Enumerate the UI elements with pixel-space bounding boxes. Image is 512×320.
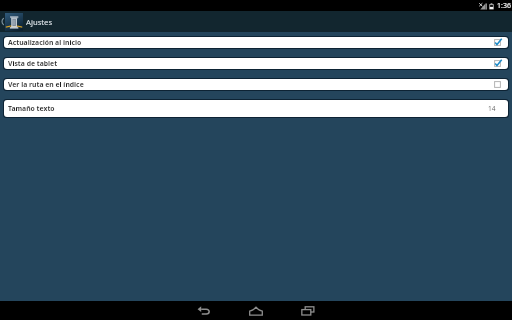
button[interactable]: Home bbox=[230, 301, 282, 320]
button[interactable]: Back bbox=[178, 301, 230, 320]
staticText: 14 bbox=[488, 104, 496, 113]
staticText: Ajustes bbox=[26, 17, 53, 27]
staticText: Ver la ruta en el índice bbox=[8, 80, 493, 89]
staticText: Actualización al inicio bbox=[8, 38, 493, 47]
staticText: Tamaño texto bbox=[8, 104, 488, 113]
staticText: Vista de tablet bbox=[8, 59, 493, 68]
staticText: 1:36 bbox=[497, 1, 511, 11]
button[interactable]: Vista de tablet bbox=[4, 58, 508, 69]
other: App icon bbox=[5, 13, 23, 31]
button[interactable]: Navigate up bbox=[0, 11, 5, 32]
button[interactable]: Actualización al inicio bbox=[4, 37, 508, 48]
button[interactable]: Ver la ruta en el índice bbox=[4, 79, 508, 90]
button[interactable]: Recent apps bbox=[282, 301, 334, 320]
button[interactable]: Tamaño texto bbox=[4, 100, 508, 117]
